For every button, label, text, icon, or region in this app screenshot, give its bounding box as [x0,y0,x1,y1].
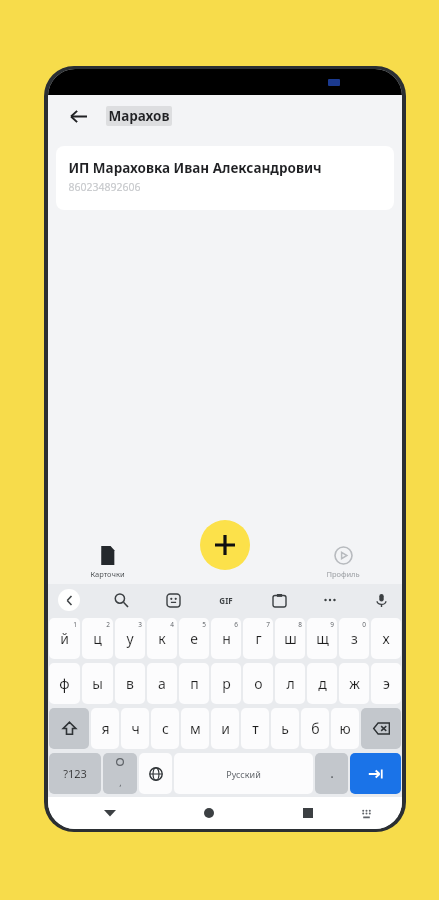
button[interactable]: Search [110,589,132,611]
staticText: Марахов [108,107,170,125]
button[interactable]: я [91,708,119,749]
button[interactable]: п [179,663,209,704]
staticText: я [101,719,110,738]
button[interactable]: Recents [295,800,321,826]
staticText: г [255,629,262,648]
button[interactable]: Next [350,753,401,794]
button[interactable]: ц [82,618,113,659]
button[interactable]: Voice input [370,589,392,611]
button[interactable]: Add [200,520,250,570]
button[interactable]: Марахов [106,106,172,126]
button[interactable]: Hide keyboard [97,800,123,826]
button[interactable]: э [371,663,401,704]
staticText: д [318,674,327,693]
staticText: ю [339,719,351,738]
button[interactable]: ы [82,663,113,704]
staticText: 8 [298,620,302,629]
staticText: ц [93,629,102,648]
staticText: 860234892606 [68,180,141,194]
staticText: . [330,766,334,781]
staticText: 6 [234,620,238,629]
button[interactable]: з [339,618,369,659]
staticText: GIF [219,595,233,606]
button[interactable]: д [307,663,337,704]
staticText: к [158,629,166,648]
button[interactable]: о [243,663,273,704]
button[interactable]: GIF [213,587,239,613]
staticText: Карточки [90,569,125,579]
staticText: у [126,629,134,648]
button[interactable]: ?123 [49,753,101,794]
button[interactable]: л [275,663,305,704]
button[interactable]: ф [49,663,80,704]
button[interactable]: Shift [49,708,89,749]
button[interactable]: Change language [139,753,172,794]
button[interactable]: Backspace [361,708,401,749]
button[interactable]: р [211,663,241,704]
staticText: э [383,674,390,693]
staticText: е [190,629,198,648]
staticText: а [158,674,166,693]
button[interactable]: в [115,663,145,704]
staticText: ж [349,674,360,693]
staticText: 9 [330,620,334,629]
staticText: ?123 [63,766,87,781]
button[interactable]: щ [307,618,337,659]
staticText: Русский [226,768,261,780]
staticText: з [351,629,358,648]
staticText: , [119,776,122,788]
staticText: 3 [138,620,142,629]
button[interactable]: х [371,618,401,659]
staticText: н [222,629,231,648]
button[interactable]: ж [339,663,369,704]
staticText: ш [284,629,297,648]
staticText: х [382,629,390,648]
staticText: ч [131,719,140,738]
button[interactable]: у [115,618,145,659]
button[interactable]: ь [271,708,299,749]
button[interactable]: Профиль [284,528,402,584]
staticText: Профиль [326,569,360,579]
button[interactable]: м [181,708,209,749]
staticText: 4 [170,620,174,629]
button[interactable]: й [49,618,80,659]
button[interactable]: ч [121,708,149,749]
button[interactable]: Русский [174,753,313,794]
staticText: с [162,719,169,738]
button[interactable]: Switch keyboard [353,800,379,826]
staticText: о [254,674,263,693]
button[interactable]: Clipboard [268,589,290,611]
button[interactable]: а [147,663,177,704]
button[interactable]: с [151,708,179,749]
button[interactable]: б [301,708,329,749]
button[interactable]: More [319,589,341,611]
button[interactable]: Back [62,100,94,132]
button[interactable]: ИП Мараховка Иван Александрович [56,146,394,210]
staticText: л [286,674,295,693]
button[interactable]: ш [275,618,305,659]
button[interactable]: Карточки [48,528,166,584]
button[interactable]: Expand [58,589,80,611]
staticText: щ [316,629,329,648]
button[interactable]: т [241,708,269,749]
button[interactable]: к [147,618,177,659]
staticText: 5 [202,620,206,629]
button[interactable]: ю [331,708,359,749]
button[interactable]: Period [315,753,348,794]
staticText: 0 [362,620,366,629]
staticText: п [190,674,199,693]
staticText: 7 [266,620,270,629]
staticText: ы [92,674,103,693]
staticText: т [252,719,259,738]
staticText: й [60,629,69,648]
staticText: и [221,719,230,738]
button[interactable]: Home [196,800,222,826]
button[interactable]: Emoji and comma [103,753,137,794]
staticText: в [126,674,134,693]
button[interactable]: г [243,618,273,659]
button[interactable]: Stickers [162,589,184,611]
staticText: ф [59,674,70,693]
button[interactable]: и [211,708,239,749]
button[interactable]: н [211,618,241,659]
button[interactable]: е [179,618,209,659]
